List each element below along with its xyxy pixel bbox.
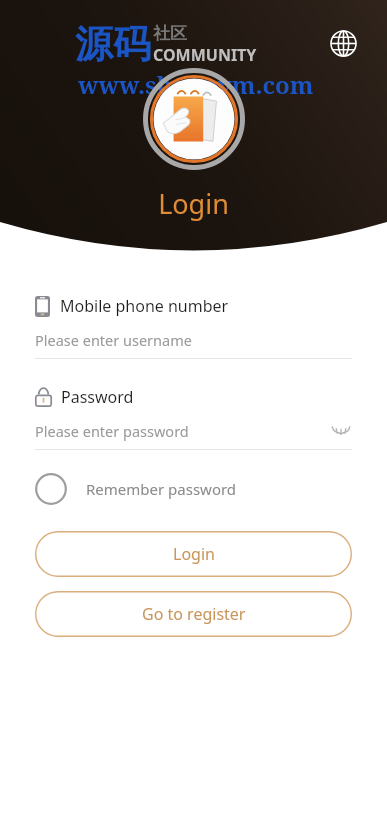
- staticText: Remember password: [86, 479, 237, 499]
- button[interactable]: Language: [326, 26, 360, 60]
- staticText: Go to register: [142, 603, 246, 625]
- button[interactable]: Show password: [330, 420, 352, 442]
- staticText: Login: [158, 185, 229, 222]
- button[interactable]: Please enter password: [35, 419, 330, 443]
- staticText: Please enter password: [35, 421, 189, 441]
- staticText: www.shequym.com: [78, 68, 314, 101]
- button[interactable]: Login: [35, 531, 352, 577]
- staticText: Password: [61, 386, 134, 408]
- staticText: Mobile phone number: [60, 295, 229, 317]
- staticText: 社区: [153, 23, 187, 44]
- staticText: Login: [173, 543, 215, 565]
- staticText: 源码: [75, 20, 151, 68]
- staticText: Please enter username: [35, 330, 192, 350]
- button[interactable]: Remember password: [35, 473, 237, 505]
- staticText: COMMUNITY: [153, 44, 257, 66]
- button[interactable]: Go to register: [35, 591, 352, 637]
- button[interactable]: Please enter username: [35, 328, 352, 352]
